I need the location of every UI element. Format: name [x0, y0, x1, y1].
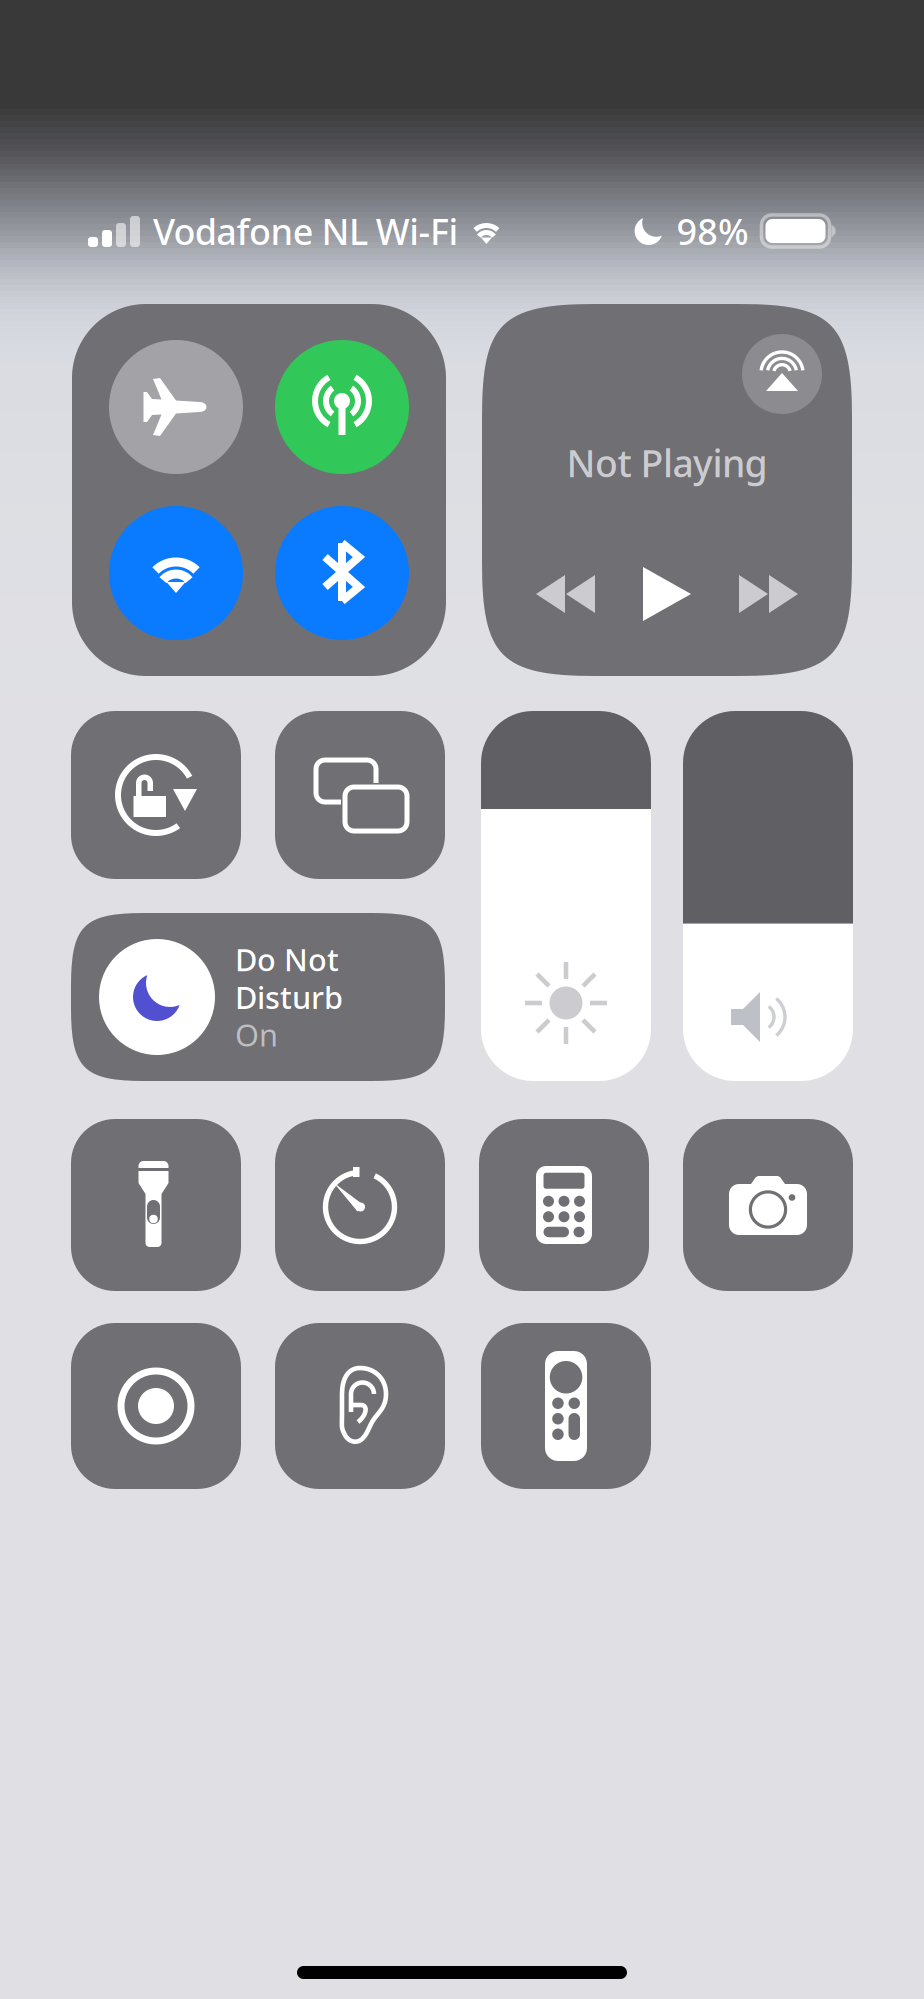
staticText: Disturb: [235, 977, 343, 1017]
staticText: Vodafone NL Wi-Fi: [153, 207, 458, 255]
button[interactable]: Timer: [275, 1119, 445, 1291]
button[interactable]: Not Playing: [482, 304, 852, 676]
button[interactable]: Flashlight: [71, 1119, 241, 1291]
button[interactable]: Do Not: [71, 913, 445, 1081]
button[interactable]: Cellular Data: [275, 340, 409, 474]
button[interactable]: Wi-Fi: [109, 506, 243, 640]
button[interactable]: Volume: [683, 711, 853, 1081]
staticText: On: [235, 1014, 278, 1055]
button[interactable]: Bluetooth: [275, 506, 409, 640]
staticText: Not Playing: [566, 438, 767, 488]
button[interactable]: Hearing: [275, 1323, 445, 1489]
button[interactable]: Brightness: [481, 711, 651, 1081]
button[interactable]: Camera: [683, 1119, 853, 1291]
button[interactable]: Airplane Mode: [109, 340, 243, 474]
button[interactable]: Screen Mirroring: [275, 711, 445, 879]
button[interactable]: Rotation Lock: [71, 711, 241, 879]
button[interactable]: Calculator: [479, 1119, 649, 1291]
button[interactable]: Screen Recording: [71, 1323, 241, 1489]
staticText: Do Not: [235, 939, 339, 980]
staticText: 98%: [677, 207, 749, 255]
button[interactable]: Apple TV Remote: [481, 1323, 651, 1489]
